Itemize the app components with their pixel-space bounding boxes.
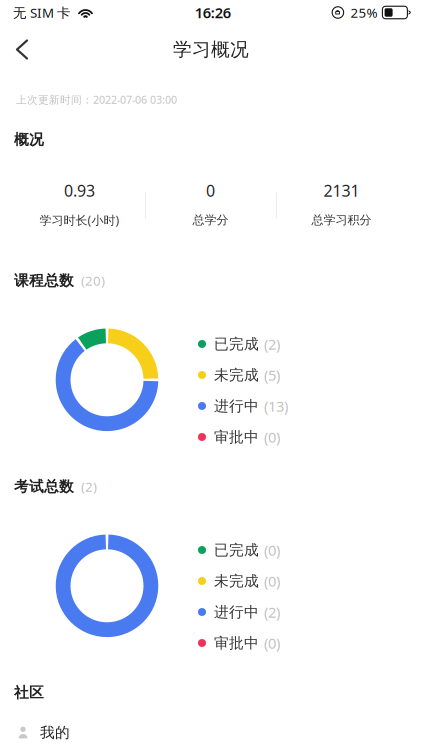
staticText: 考试总数 [14,477,74,495]
staticText: 已完成 [214,541,259,559]
button[interactable]: 返回 [0,27,43,71]
staticText: 学习概况 [173,38,249,61]
staticText: 总学习积分 [311,213,371,227]
staticText: 0 [206,180,215,201]
staticText: 未完成 [214,572,259,590]
staticText: 2131 [323,180,359,201]
staticText: 上次更新时间：2022-07-06 03:00 [16,92,177,107]
staticText: (0) [264,427,280,447]
staticText: (2) [264,334,280,354]
staticText: 进行中 [214,603,259,621]
staticText: 课程总数 [14,271,74,289]
staticText: (0) [264,540,280,560]
staticText: 25% [350,4,377,21]
staticText: 已完成 [214,335,259,353]
staticText: 社区 [14,683,44,701]
button[interactable]: 我的 [0,712,422,750]
staticText: 审批中 [214,634,259,652]
staticText: 概况 [14,130,44,148]
staticText: (2) [81,478,97,495]
staticText: 未完成 [214,366,259,384]
staticText: 16:26 [195,3,231,22]
staticText: 审批中 [214,428,259,446]
staticText: 进行中 [214,397,259,415]
staticText: (2) [264,602,280,622]
staticText: 0.93 [64,180,95,201]
staticText: (13) [264,396,288,416]
staticText: (20) [81,272,105,289]
staticText: (5) [264,365,280,385]
staticText: 学习时长(小时) [39,212,119,228]
staticText: 我的 [40,723,70,741]
staticText: (0) [264,633,280,653]
staticText: 无 SIM 卡 [13,4,70,21]
staticText: 总学分 [192,213,228,227]
staticText: (0) [264,571,280,591]
